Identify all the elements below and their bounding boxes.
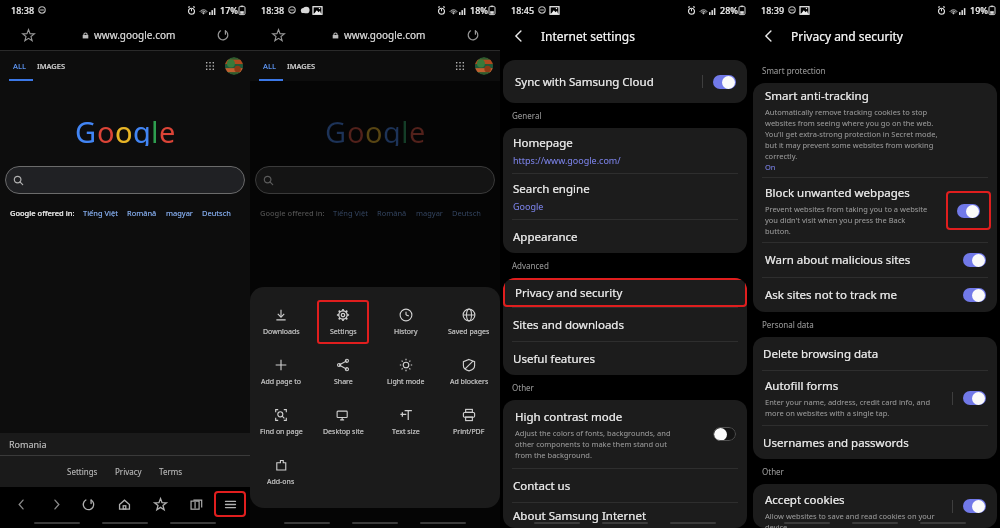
staticText: e	[159, 112, 176, 146]
staticText: Privacy	[115, 466, 142, 477]
staticText: About Samsung Internet	[513, 508, 647, 524]
staticText: Accept cookies	[765, 492, 845, 508]
staticText: Google offered in:	[260, 208, 325, 218]
button[interactable]: Sites and downloads	[503, 308, 747, 341]
button[interactable]: High contrast mode	[503, 400, 747, 468]
button[interactable]: Light mode	[380, 350, 432, 394]
staticText: Ask sites not to track me	[765, 287, 963, 303]
button[interactable]: Usernames and passwords	[753, 426, 997, 459]
button[interactable]: Account	[225, 57, 243, 75]
staticText: Deutsch	[202, 208, 231, 218]
button[interactable]: Ask sites not to track me	[753, 278, 997, 312]
button[interactable]: Forward	[43, 491, 69, 517]
button[interactable]: Back	[8, 491, 34, 517]
staticText: Text size	[392, 427, 420, 437]
staticText: 18%	[470, 4, 488, 16]
staticText: Sites and downloads	[513, 317, 624, 333]
button[interactable]: Toggle	[957, 204, 980, 218]
button[interactable]: Useful features	[503, 342, 747, 375]
button[interactable]: Română	[127, 208, 157, 218]
button[interactable]: Privacy	[115, 466, 142, 477]
button[interactable]: History	[380, 300, 432, 344]
button[interactable]: Search engine	[503, 174, 747, 219]
button[interactable]: Reload	[75, 491, 101, 517]
staticText: o	[347, 112, 365, 146]
button[interactable]: ALL	[13, 61, 26, 71]
staticText: Google	[513, 200, 544, 212]
staticText: Smart anti-tracking	[765, 88, 869, 104]
button[interactable]: Apps	[202, 58, 218, 74]
staticText: 18:39	[761, 4, 785, 16]
button[interactable]: Text size	[380, 400, 432, 444]
button[interactable]	[5, 166, 245, 194]
button[interactable]: Settings	[67, 466, 98, 477]
staticText: Add-ons	[267, 477, 295, 487]
button[interactable]: About Samsung Internet	[503, 503, 747, 528]
button[interactable]: Deutsch	[202, 208, 231, 218]
staticText: Usernames and passwords	[763, 435, 909, 451]
button[interactable]: Accept cookies	[753, 484, 952, 528]
staticText: Allow websites to save and read cookies …	[765, 511, 948, 528]
staticText: High contrast mode	[515, 409, 623, 425]
button[interactable]: Back	[759, 26, 779, 46]
button[interactable]: Toggle	[963, 499, 986, 513]
staticText: magyar	[416, 208, 443, 218]
staticText: g	[133, 112, 151, 146]
button[interactable]: Tabs	[183, 491, 209, 517]
button[interactable]: Home	[111, 491, 137, 517]
button[interactable]: Contact us	[503, 469, 747, 502]
button[interactable]: Tiếng Việt	[83, 208, 118, 218]
button[interactable]: Menu	[214, 491, 246, 517]
button[interactable]: Autofill forms	[753, 371, 952, 425]
button[interactable]: Appearance	[503, 220, 747, 253]
staticText: Smart protection	[762, 65, 826, 76]
button[interactable]: Bookmark	[18, 25, 38, 45]
staticText: Google offered in:	[10, 208, 75, 218]
button[interactable]: Toggle	[713, 75, 736, 89]
button[interactable]: Saved pages	[443, 300, 495, 344]
button[interactable]: Block unwanted webpages	[753, 178, 946, 242]
button[interactable]: Add page to	[255, 350, 307, 394]
button[interactable]: Smart anti-tracking	[753, 83, 997, 177]
button[interactable]: magyar	[166, 208, 193, 218]
staticText: Personal data	[762, 319, 814, 330]
button[interactable]: Toggle	[713, 427, 736, 441]
button[interactable]: IMAGES	[37, 61, 66, 71]
staticText: 17%	[220, 4, 238, 16]
button[interactable]: Privacy and security	[503, 278, 747, 307]
button[interactable]: Add-ons	[255, 450, 307, 494]
button[interactable]: Toggle	[963, 391, 986, 405]
button[interactable]: Print/PDF	[443, 400, 495, 444]
button[interactable]: Bookmarks	[147, 491, 173, 517]
staticText: Add page to	[261, 377, 301, 387]
staticText: Light mode	[387, 377, 425, 387]
button[interactable]: Warn about malicious sites	[753, 243, 997, 277]
button[interactable]: Sync with Samsung Cloud	[503, 60, 747, 103]
staticText: 18:45	[511, 4, 535, 16]
staticText: Settings	[67, 466, 98, 477]
staticText: Share	[334, 377, 353, 387]
button[interactable]: Delete browsing data	[753, 337, 997, 370]
button[interactable]: Toggle	[963, 288, 986, 302]
button[interactable]: Ad blockers	[443, 350, 495, 394]
button[interactable]: Homepage	[503, 128, 747, 173]
button[interactable]: Back	[509, 26, 529, 46]
staticText: Prevent websites from taking you to a we…	[765, 204, 928, 236]
staticText: Block unwanted webpages	[765, 185, 910, 201]
button[interactable]: Downloads	[255, 300, 307, 344]
button[interactable]: Toggle	[963, 253, 986, 267]
button[interactable]: Reload	[215, 27, 231, 43]
button[interactable]: Share	[317, 350, 369, 394]
staticText: Enter your name, address, credit card in…	[765, 397, 948, 418]
button[interactable]: Desktop site	[317, 400, 369, 444]
staticText: Other	[512, 382, 534, 393]
staticText: Appearance	[513, 229, 578, 245]
button[interactable]: Settings	[317, 300, 369, 344]
staticText: Română	[377, 208, 407, 218]
staticText: o	[97, 112, 115, 146]
staticText: Print/PDF	[453, 427, 485, 437]
staticText: Search engine	[513, 181, 590, 197]
button[interactable]: Terms	[159, 466, 183, 477]
staticText: IMAGES	[37, 61, 66, 71]
button[interactable]: Find on page	[255, 400, 307, 444]
